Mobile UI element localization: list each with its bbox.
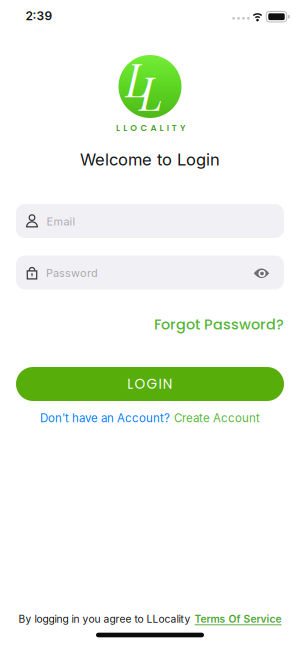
staticText: By logging in you agree to LLocality bbox=[18, 613, 190, 625]
staticText: 2:39 bbox=[25, 9, 52, 23]
staticText: L bbox=[126, 51, 149, 105]
staticText: Email bbox=[46, 215, 75, 228]
button[interactable]: LOGIN bbox=[16, 367, 284, 401]
staticText: Create Account bbox=[174, 411, 260, 425]
staticText: L L O C A L I T Y bbox=[116, 122, 185, 134]
button[interactable]: Show password bbox=[253, 266, 271, 280]
staticText: Don't have an Account? bbox=[40, 411, 170, 425]
button[interactable]: Terms Of Service bbox=[194, 613, 281, 625]
staticText: L bbox=[139, 65, 162, 118]
button[interactable]: Create Account bbox=[174, 411, 260, 425]
staticText: Terms Of Service bbox=[194, 613, 281, 625]
staticText: LOGIN bbox=[127, 374, 173, 393]
staticText: Welcome to Login bbox=[80, 149, 220, 169]
button[interactable]: Forgot Password? bbox=[154, 314, 284, 335]
staticText: Forgot Password? bbox=[154, 314, 284, 335]
staticText: Password bbox=[46, 266, 98, 280]
